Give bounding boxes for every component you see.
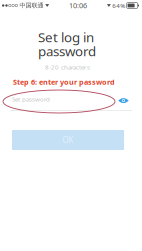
staticText: Set log in [38, 28, 94, 46]
button[interactable]: Show password [0, 0, 17, 13]
staticText: password [38, 42, 96, 60]
button[interactable]: OK [0, 0, 112, 20]
staticText: Set password [12, 95, 50, 103]
staticText: Step 6: enter your password [13, 77, 115, 87]
staticText: 64% [112, 1, 125, 10]
staticText: 8-20 characters [45, 63, 90, 71]
staticText: 10:06 [69, 1, 87, 10]
staticText: OK [62, 135, 73, 145]
staticText: 中国联通 [19, 2, 43, 9]
